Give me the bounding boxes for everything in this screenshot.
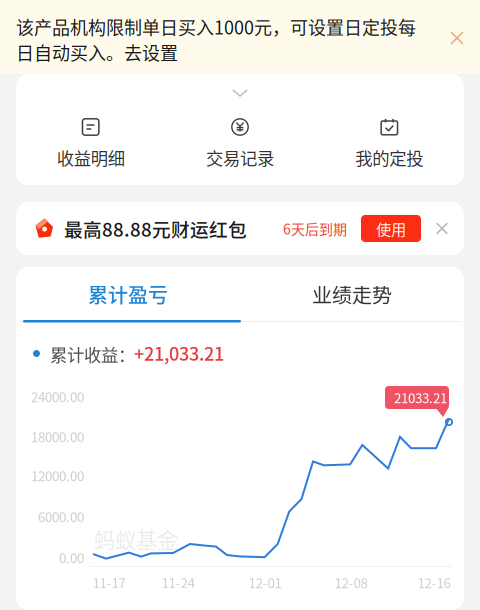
button[interactable]: 最高88.88元财运红包 xyxy=(16,202,464,255)
button[interactable]: 我的定投 xyxy=(315,114,464,174)
staticText: 累计盈亏 xyxy=(88,279,168,308)
staticText: 0.00 xyxy=(59,548,84,567)
staticText: 12-16 xyxy=(417,573,450,592)
button[interactable]: 收益明细 xyxy=(16,114,165,174)
button[interactable]: 交易记录 xyxy=(165,114,315,174)
staticText: 累计收益： xyxy=(50,341,135,367)
staticText: 11-24 xyxy=(161,573,194,592)
button[interactable]: Close banner xyxy=(443,24,471,52)
staticText: 业绩走势 xyxy=(312,279,392,308)
staticText: 使用 xyxy=(376,217,406,240)
staticText: 该产品机构限制单日买入1000元，可设置日定投每日自动买入。去设置 xyxy=(16,14,416,65)
button[interactable]: Collapse xyxy=(205,83,275,103)
staticText: 12-08 xyxy=(334,573,367,592)
staticText: +21,033.21 xyxy=(134,340,224,366)
staticText: 6天后到期 xyxy=(283,218,347,239)
staticText: 6000.00 xyxy=(38,507,84,526)
staticText: 交易记录 xyxy=(206,145,274,170)
staticText: 收益明细 xyxy=(57,145,125,170)
staticText: 24000.00 xyxy=(31,387,84,406)
button[interactable]: 累计盈亏 xyxy=(16,267,240,321)
staticText: 18000.00 xyxy=(31,427,84,446)
staticText: 12-01 xyxy=(248,573,281,592)
staticText: 我的定投 xyxy=(355,145,423,170)
staticText: 最高88.88元财运红包 xyxy=(64,215,247,242)
staticText: 21033.21 xyxy=(394,388,447,407)
staticText: 11-17 xyxy=(92,573,125,592)
button[interactable]: 业绩走势 xyxy=(240,267,464,321)
staticText: 蚂蚁基金 xyxy=(94,524,178,554)
staticText: 12000.00 xyxy=(31,466,84,485)
